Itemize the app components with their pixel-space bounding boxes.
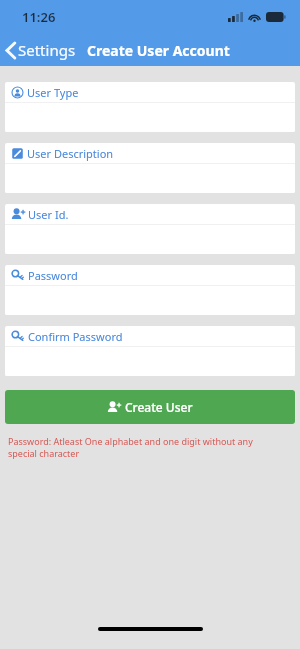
staticText: Create User: [125, 399, 193, 415]
button[interactable]: User Id.: [5, 204, 295, 254]
staticText: Settings: [18, 40, 76, 60]
button[interactable]: User Type: [5, 82, 295, 132]
staticText: Confirm Password: [28, 329, 123, 344]
staticText: User Type: [27, 85, 79, 100]
staticText: Create User Account: [87, 41, 230, 60]
button[interactable]: Confirm Password: [5, 326, 295, 376]
staticText: 11:26: [22, 8, 56, 26]
button[interactable]: Back: [0, 38, 82, 62]
staticText: Password: Atleast One alphabet and one d…: [8, 435, 265, 460]
button[interactable]: Password: [5, 265, 295, 315]
staticText: User Description: [27, 146, 114, 161]
button[interactable]: Create User: [5, 390, 295, 424]
other: Back: [6, 42, 16, 59]
staticText: User Id.: [28, 207, 69, 222]
button[interactable]: User Description: [5, 143, 295, 193]
staticText: Password: [28, 268, 78, 283]
